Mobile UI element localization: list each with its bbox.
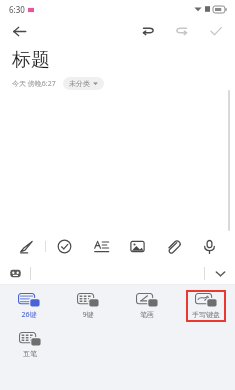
button[interactable]: Attach: [155, 231, 191, 261]
button[interactable]: Redo: [169, 18, 195, 44]
staticText: 26键: [21, 310, 37, 320]
staticText: 五笔: [23, 349, 37, 358]
button[interactable]: 9键: [71, 290, 105, 323]
button[interactable]: 未分类: [63, 77, 104, 90]
button[interactable]: [31, 261, 204, 285]
button[interactable]: 26键: [12, 290, 46, 323]
button[interactable]: Undo: [135, 18, 161, 44]
button[interactable]: Voice: [191, 231, 227, 261]
button[interactable]: Emoji: [0, 261, 30, 285]
button[interactable]: Pen: [8, 231, 45, 261]
staticText: 6:30: [9, 4, 25, 15]
button[interactable]: Done: [203, 18, 229, 44]
button[interactable]: Collapse keyboard: [205, 261, 235, 285]
button[interactable]: 手写键盘: [186, 290, 226, 322]
staticText: 9键: [82, 310, 94, 320]
button[interactable]: 五笔: [13, 329, 47, 361]
staticText: 笔画: [140, 310, 154, 319]
button[interactable]: Text style: [83, 231, 119, 261]
staticText: 标题: [12, 48, 50, 72]
button[interactable]: 笔画: [130, 290, 164, 322]
button[interactable]: Checklist: [46, 231, 83, 261]
button[interactable]: Back: [6, 18, 32, 44]
button[interactable]: Image: [119, 231, 155, 261]
staticText: 手写键盘: [192, 310, 220, 319]
staticText: 今天 傍晚6:27: [12, 79, 56, 89]
staticText: 未分类: [69, 79, 90, 88]
